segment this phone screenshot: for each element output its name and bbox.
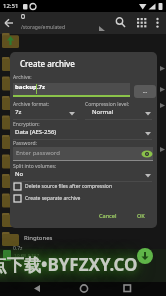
staticText: 点下载•BYFZXY.CO — [0, 253, 138, 276]
staticText: Create separate archive — [25, 195, 81, 202]
button[interactable]: OK — [132, 209, 150, 222]
staticText: No — [15, 170, 24, 178]
button[interactable] — [74, 282, 94, 296]
staticText: Split into volumes: — [13, 163, 57, 170]
button[interactable] — [0, 249, 166, 282]
button[interactable] — [2, 15, 16, 31]
button[interactable] — [13, 194, 152, 205]
button[interactable] — [117, 282, 137, 296]
button[interactable]: ... — [134, 85, 156, 98]
staticText: Data (AES-256) — [15, 128, 57, 136]
staticText: Password: — [13, 140, 37, 147]
button[interactable] — [112, 14, 128, 32]
button[interactable] — [13, 108, 77, 120]
staticText: 7z — [15, 108, 22, 116]
button[interactable] — [26, 282, 46, 296]
staticText: Cancel — [99, 212, 117, 219]
staticText: 0 — [21, 12, 26, 22]
button[interactable] — [0, 230, 166, 249]
staticText: Ringtones — [24, 234, 53, 242]
button[interactable] — [137, 248, 153, 264]
staticText: backup.7z — [15, 83, 45, 91]
staticText: Create archive — [20, 58, 75, 69]
staticText: 1.0 KB 0:23.7 — [14, 253, 40, 258]
staticText: 0.7z — [13, 245, 23, 252]
staticText: Normal — [92, 108, 114, 116]
button[interactable] — [13, 182, 152, 193]
staticText: 12:51 — [3, 2, 19, 10]
staticText: Encryption: — [13, 121, 40, 128]
staticText: Compression level: — [85, 101, 130, 108]
staticText: Archive format: — [13, 101, 50, 108]
staticText: OK — [137, 212, 145, 219]
button[interactable] — [13, 128, 152, 140]
staticText: /storage/emulated — [21, 24, 65, 31]
button[interactable] — [13, 83, 130, 96]
button[interactable] — [132, 14, 148, 32]
staticText: Delete source files after compression — [25, 183, 112, 190]
staticText: Archive: — [13, 74, 32, 81]
staticText: Enter password — [16, 149, 60, 157]
button[interactable] — [85, 108, 152, 120]
button[interactable]: Cancel — [94, 209, 122, 222]
button[interactable] — [13, 147, 153, 161]
button[interactable] — [13, 170, 152, 182]
staticText: 点下载•BYFZXY.CO — [0, 253, 138, 276]
staticText: ... — [143, 88, 148, 95]
button[interactable] — [151, 14, 164, 32]
